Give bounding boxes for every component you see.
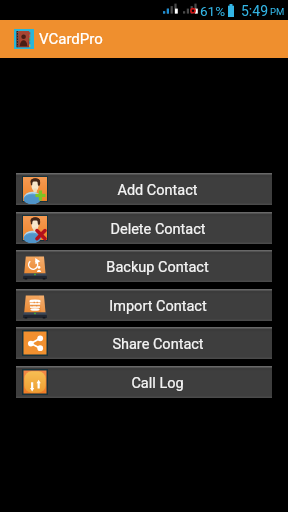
staticText: PM <box>270 6 285 17</box>
staticText: 61% <box>200 3 226 19</box>
staticText: Delete Contact <box>110 221 206 238</box>
button[interactable]: Backup Contact <box>16 250 272 282</box>
button[interactable]: Delete Contact <box>16 212 272 244</box>
staticText: Backup Contact <box>106 259 209 276</box>
staticText: Share Contact <box>112 336 204 353</box>
staticText: Import Contact <box>109 298 207 315</box>
button[interactable]: Add Contact <box>16 173 272 205</box>
staticText: 5:49 <box>241 3 268 19</box>
staticText: Add Contact <box>117 182 198 199</box>
button[interactable]: Call Log <box>16 366 272 398</box>
button[interactable]: Share Contact <box>16 327 272 359</box>
staticText: VCardPro <box>39 30 103 48</box>
button[interactable]: Import Contact <box>16 289 272 321</box>
staticText: Call Log <box>131 375 184 392</box>
other: VCardPro <box>14 29 34 49</box>
